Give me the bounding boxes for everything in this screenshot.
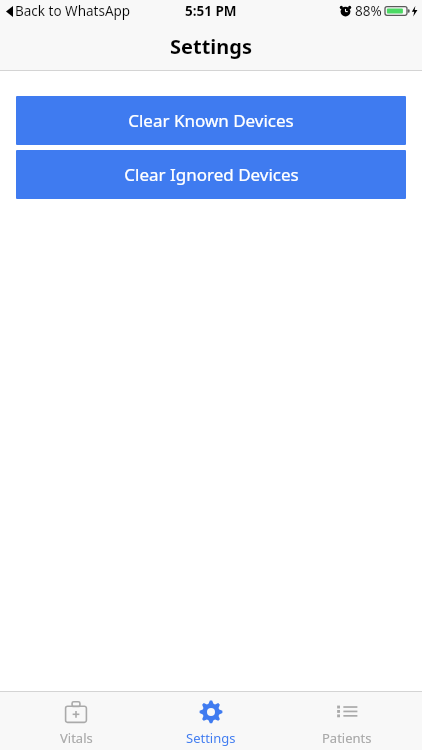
staticText: Vitals	[60, 729, 93, 747]
button[interactable]: Clear Known Devices	[16, 96, 406, 145]
button[interactable]: Settings	[151, 696, 271, 747]
staticText: 5:51 PM	[185, 2, 237, 20]
staticText: Patients	[322, 729, 372, 747]
staticText: Settings	[186, 729, 236, 747]
button[interactable]: Back to WhatsApp	[0, 2, 137, 20]
button[interactable]: Vitals	[16, 696, 136, 747]
staticText: Back to WhatsApp	[15, 2, 131, 20]
staticText: 88%	[355, 2, 382, 20]
staticText: Clear Known Devices	[128, 109, 294, 132]
button[interactable]: Patients	[287, 696, 407, 747]
staticText: Clear Ignored Devices	[124, 163, 299, 186]
staticText: Settings	[170, 33, 252, 60]
button[interactable]: Clear Ignored Devices	[16, 150, 406, 199]
